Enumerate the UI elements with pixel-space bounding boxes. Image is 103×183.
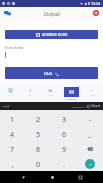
button[interactable]: -: [77, 111, 103, 126]
staticText: powered by: [72, 105, 86, 108]
staticText: 5: [36, 129, 41, 139]
staticText: 0: [36, 159, 41, 169]
button[interactable]: 4: [0, 126, 25, 141]
staticText: ,: [12, 159, 14, 169]
button[interactable]: Chats: [1, 7, 14, 20]
button[interactable]: GIF: [20, 81, 40, 102]
staticText: Gboard: [91, 104, 101, 108]
button[interactable]: _: [77, 126, 103, 141]
button[interactable]: 9: [51, 141, 77, 156]
button[interactable]: ,: [0, 156, 25, 171]
staticText: -: [89, 114, 92, 124]
staticText: GIF: [28, 94, 32, 97]
button[interactable]: Recents: [74, 171, 86, 183]
button[interactable]: 6: [51, 126, 77, 141]
button[interactable]: 5: [25, 126, 51, 141]
staticText: 4: [10, 129, 15, 139]
button[interactable]: Backspace: [77, 141, 103, 156]
button[interactable]: Emoji: [40, 81, 61, 102]
button[interactable]: Home: [46, 171, 58, 183]
other: Done: [85, 159, 95, 169]
staticText: 3: [62, 114, 67, 124]
staticText: 9: [62, 144, 67, 154]
button[interactable]: CALL: [5, 67, 98, 79]
button[interactable]: Stickers: [0, 81, 20, 102]
button[interactable]: 3: [51, 111, 77, 126]
staticText: More: [90, 94, 96, 97]
staticText: 1: [10, 114, 15, 124]
staticText: Emoji: [48, 94, 54, 97]
button[interactable]: 2: [25, 111, 51, 126]
staticText: 12:34: [91, 1, 101, 6]
staticText: 6: [62, 129, 67, 139]
button[interactable]: 8: [25, 141, 51, 156]
button[interactable]: Back: [17, 171, 29, 183]
button[interactable]: 7: [0, 141, 25, 156]
staticText: 8: [36, 144, 41, 154]
button[interactable]: 0: [25, 156, 51, 171]
button[interactable]: .: [51, 156, 77, 171]
staticText: Dialpad: [44, 11, 60, 17]
staticText: 2: [36, 114, 41, 124]
staticText: Keyboard: [67, 98, 77, 101]
staticText: ADDRESS BOOK: [42, 32, 68, 37]
button[interactable]: Keyboard: [61, 81, 82, 102]
button[interactable]: Power off: [89, 6, 102, 19]
button[interactable]: Done: [77, 156, 103, 171]
other: Backspace: [77, 141, 103, 156]
button[interactable]: ADDRESS BOOK: [5, 30, 98, 39]
staticText: Sticker: [7, 94, 14, 97]
staticText: .: [63, 159, 65, 169]
staticText: _: [88, 129, 92, 139]
staticText: Phone Number: [5, 46, 24, 50]
staticText: 7: [10, 144, 15, 154]
button[interactable]: 1: [0, 111, 25, 126]
staticText: CALL: [44, 71, 53, 76]
